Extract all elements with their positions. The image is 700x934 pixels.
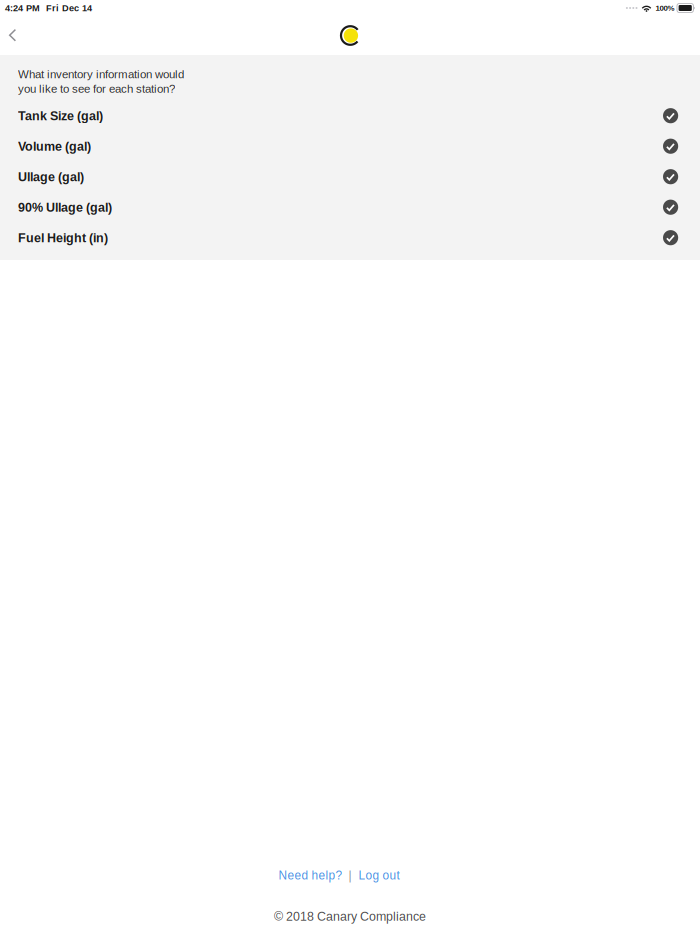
button[interactable]: Log out bbox=[351, 869, 399, 882]
staticText: Ullage (gal) bbox=[18, 170, 84, 184]
button[interactable]: Volume (gal) bbox=[0, 131, 700, 162]
staticText: 90% Ullage (gal) bbox=[18, 200, 112, 214]
staticText: Fuel Height (in) bbox=[18, 231, 108, 245]
staticText: Need help? bbox=[278, 869, 342, 882]
staticText: 4:24 PM bbox=[5, 3, 40, 13]
staticText: 100% bbox=[655, 4, 674, 12]
button[interactable]: Fuel Height (in) bbox=[0, 223, 700, 253]
staticText: | bbox=[348, 869, 351, 882]
staticText: Fri Dec 14 bbox=[46, 3, 92, 13]
staticText: What inventory information would bbox=[18, 68, 184, 81]
staticText: Volume (gal) bbox=[18, 139, 91, 153]
staticText: you like to see for each station? bbox=[18, 82, 175, 95]
button[interactable]: Ullage (gal) bbox=[0, 162, 700, 192]
staticText: Log out bbox=[358, 869, 399, 882]
button[interactable]: Need help? bbox=[278, 869, 348, 882]
button[interactable]: 90% Ullage (gal) bbox=[0, 192, 700, 223]
button[interactable]: Tank Size (gal) bbox=[0, 101, 700, 131]
staticText: © 2018 Canary Compliance bbox=[274, 910, 426, 923]
button[interactable]: Back bbox=[0, 16, 34, 54]
staticText: Tank Size (gal) bbox=[18, 109, 103, 123]
